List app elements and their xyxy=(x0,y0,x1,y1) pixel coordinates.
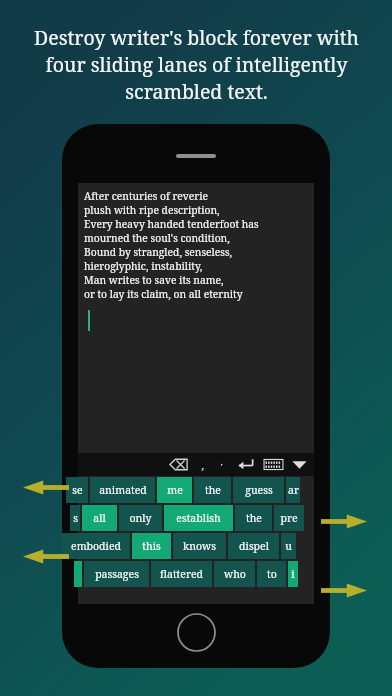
button[interactable]: Hide keyboard xyxy=(289,454,310,475)
button[interactable]: Slide lane right xyxy=(321,583,367,598)
button[interactable]: Backspace xyxy=(168,454,189,475)
button[interactable]: this xyxy=(132,533,171,559)
button[interactable]: passages xyxy=(84,561,149,587)
button[interactable]: establish xyxy=(164,505,233,531)
staticText: se xyxy=(72,483,83,497)
button[interactable]: to xyxy=(257,561,286,587)
staticText: this xyxy=(142,539,161,553)
button[interactable]: guess xyxy=(233,477,284,503)
button[interactable]: s xyxy=(70,505,80,531)
staticText: flattered xyxy=(160,567,203,581)
staticText: Destroy writer's block forever with four… xyxy=(34,24,359,105)
button[interactable]: · xyxy=(216,454,227,475)
staticText: mourned the soul's condition, xyxy=(84,231,230,245)
button[interactable]: the xyxy=(235,505,272,531)
button[interactable]: Slide lane right xyxy=(321,514,367,529)
staticText: u xyxy=(285,539,292,553)
staticText: establish xyxy=(176,511,221,525)
button[interactable]: knows xyxy=(173,533,226,559)
staticText: ar xyxy=(288,483,299,497)
button[interactable]: who xyxy=(214,561,255,587)
staticText: or to lay its claim, on all eternity xyxy=(84,287,243,301)
staticText: Man writes to save its name, xyxy=(84,273,224,287)
staticText: to xyxy=(267,567,277,581)
button[interactable]: embodied xyxy=(62,533,130,559)
staticText: s xyxy=(73,511,78,525)
staticText: , xyxy=(201,457,204,472)
button[interactable]: Keyboard xyxy=(263,454,284,475)
button[interactable]: the xyxy=(194,477,231,503)
staticText: hieroglyphic, instability, xyxy=(84,259,203,273)
staticText: animated xyxy=(99,483,147,497)
button[interactable]: Return xyxy=(235,454,256,475)
staticText: the xyxy=(205,483,221,497)
staticText: Bound by strangled, senseless, xyxy=(84,245,233,259)
button[interactable]: only xyxy=(119,505,162,531)
staticText: all xyxy=(93,511,106,525)
button[interactable]: me xyxy=(157,477,192,503)
staticText: knows xyxy=(183,539,216,553)
staticText: plush with ripe description, xyxy=(84,203,220,217)
staticText: i xyxy=(291,567,295,581)
staticText: who xyxy=(224,567,246,581)
button[interactable]: dispel xyxy=(228,533,279,559)
staticText: me xyxy=(167,483,183,497)
staticText: passages xyxy=(95,567,139,581)
button[interactable]: flattered xyxy=(151,561,212,587)
staticText: dispel xyxy=(239,539,269,553)
button[interactable]: i xyxy=(288,561,298,587)
button[interactable]: all xyxy=(82,505,117,531)
button[interactable]: pre xyxy=(274,505,304,531)
button[interactable]: animated xyxy=(90,477,155,503)
staticText: Every heavy handed tenderfoot has xyxy=(84,217,259,231)
staticText: only xyxy=(129,511,152,525)
staticText: · xyxy=(220,457,223,472)
staticText: guess xyxy=(245,483,273,497)
staticText: pre xyxy=(280,511,298,525)
staticText: the xyxy=(246,511,262,525)
button[interactable]: u xyxy=(281,533,296,559)
button[interactable]: Home xyxy=(177,613,216,652)
button[interactable]: , xyxy=(197,454,208,475)
button[interactable]: ar xyxy=(286,477,300,503)
button[interactable]: Slide lane left xyxy=(23,480,69,495)
staticText: embodied xyxy=(71,539,121,553)
staticText: After centuries of reverie xyxy=(84,189,208,203)
button[interactable]: se xyxy=(66,477,88,503)
button[interactable]: Slide lane left xyxy=(23,549,69,564)
